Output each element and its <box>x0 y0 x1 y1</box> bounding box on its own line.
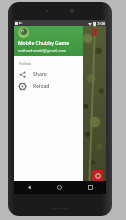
button[interactable]: Home <box>44 181 75 194</box>
button[interactable]: Record <box>92 170 103 181</box>
button[interactable]: Mobile Chubby Game <box>14 26 83 56</box>
staticText: Reload <box>33 83 50 90</box>
staticText: 7:08 <box>97 21 105 26</box>
button[interactable]: Reload <box>14 80 83 92</box>
button[interactable]: Share <box>14 68 83 80</box>
button[interactable]: Back <box>14 181 44 194</box>
staticText: Mobile Chubby Game <box>18 40 70 47</box>
staticText: Share <box>33 71 47 78</box>
staticText: Follow <box>19 61 32 66</box>
staticText: nathanhewitt@gmail.com <box>18 48 67 53</box>
button[interactable]: Recent apps <box>75 181 106 194</box>
